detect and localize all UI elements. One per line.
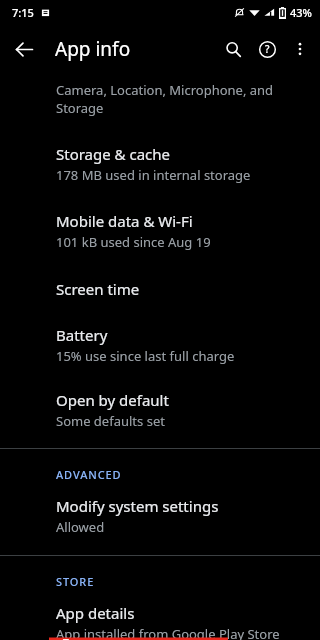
staticText: 43% xyxy=(290,5,312,20)
staticText: Modify system settings xyxy=(56,496,219,516)
button[interactable]: Modify system settings xyxy=(0,482,320,536)
button[interactable]: More options xyxy=(284,33,316,65)
button[interactable]: Search xyxy=(216,32,250,66)
staticText: Camera, Location, Microphone, and Storag… xyxy=(56,81,308,117)
button[interactable]: Open by default xyxy=(0,365,320,430)
staticText: App details xyxy=(56,603,135,623)
button[interactable]: Screen time xyxy=(0,251,320,299)
staticText: 7:15 xyxy=(12,5,34,20)
staticText: Mobile data & Wi-Fi xyxy=(56,211,193,231)
staticText: Some defaults set xyxy=(56,412,165,430)
staticText: Battery xyxy=(56,325,108,345)
staticText: Allowed xyxy=(56,518,105,536)
button[interactable]: Storage & cache xyxy=(0,117,320,184)
staticText: 101 kB used since Aug 19 xyxy=(56,233,211,251)
staticText: App info xyxy=(55,36,131,62)
staticText: App installed from Google Play Store xyxy=(56,625,280,640)
staticText: 178 MB used in internal storage xyxy=(56,166,251,184)
button[interactable]: Mobile data & Wi-Fi xyxy=(0,184,320,251)
staticText: Storage & cache xyxy=(56,144,171,164)
staticText: 15% use since last full charge xyxy=(56,347,235,365)
button[interactable]: Battery xyxy=(0,299,320,365)
button[interactable]: Back xyxy=(8,33,40,65)
staticText: Open by default xyxy=(56,390,169,410)
staticText: STORE xyxy=(56,574,95,589)
staticText: ? xyxy=(265,42,270,56)
button[interactable]: Help xyxy=(250,32,284,66)
staticText: Screen time xyxy=(56,279,140,299)
button[interactable]: App details xyxy=(0,589,320,640)
staticText: ADVANCED xyxy=(56,467,122,482)
